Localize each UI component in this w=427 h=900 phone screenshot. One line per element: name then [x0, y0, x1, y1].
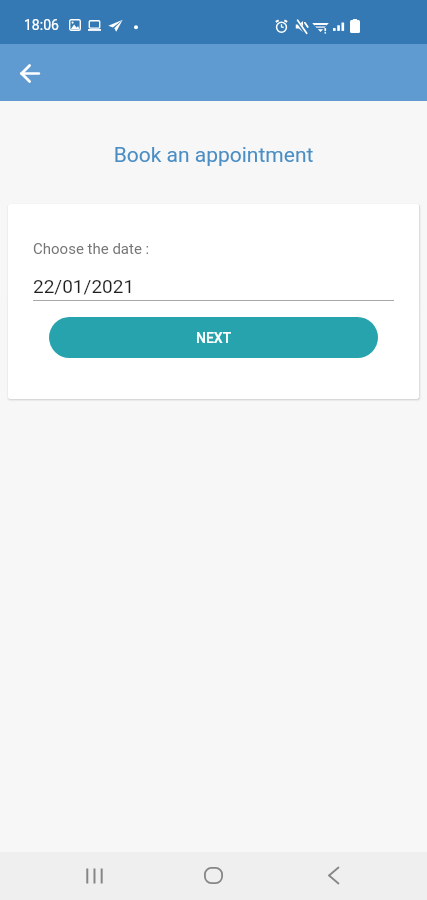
staticText: 22/01/2021 — [33, 275, 135, 297]
staticText: Choose the date : — [33, 240, 150, 258]
button[interactable]: Back — [7, 50, 53, 96]
button[interactable]: Back — [310, 852, 357, 899]
button[interactable]: Home — [190, 852, 237, 899]
staticText: 18:06 — [24, 17, 59, 33]
staticText: Book an appointment — [0, 143, 427, 168]
staticText: NEXT — [196, 330, 232, 346]
button[interactable]: Recent apps — [70, 852, 117, 899]
button[interactable]: NEXT — [49, 317, 378, 358]
